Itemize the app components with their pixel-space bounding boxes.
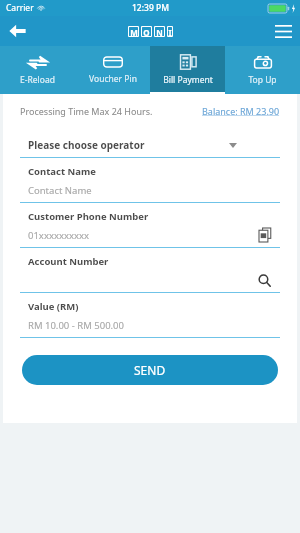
staticText: SEND — [134, 362, 166, 378]
button[interactable]: SEND — [22, 355, 278, 385]
staticText: M — [130, 27, 138, 36]
staticText: Carrier — [6, 2, 34, 14]
staticText: Processing Time Max 24 Hours. — [20, 105, 153, 117]
button[interactable]: Voucher Pin — [75, 46, 150, 94]
button[interactable]: Please choose operator — [3, 133, 297, 157]
button[interactable]: Search — [256, 272, 272, 288]
staticText: Voucher Pin — [89, 73, 137, 85]
button[interactable]: Account Number — [3, 248, 297, 292]
staticText: Value (RM) — [28, 300, 79, 313]
button[interactable]: Value (RM) — [3, 293, 297, 337]
staticText: Account Number — [28, 255, 109, 268]
staticText: Balance: RM 23.90 — [202, 105, 280, 117]
staticText: Contact Name — [28, 184, 92, 197]
button[interactable]: Back — [0, 16, 34, 46]
button[interactable]: Customer Phone Number — [3, 203, 297, 247]
button[interactable]: Top Up — [225, 46, 300, 94]
staticText: Bill Payment — [163, 74, 213, 86]
staticText: N — [156, 27, 163, 36]
staticText: 12:39 PM — [132, 2, 169, 14]
button[interactable]: Menu — [266, 16, 300, 46]
staticText: E-Reload — [20, 74, 55, 86]
staticText: RM 10.00 - RM 500.00 — [28, 319, 124, 332]
staticText: Please choose operator — [28, 138, 145, 152]
button[interactable]: Bill Payment — [150, 46, 225, 94]
staticText: I — [168, 27, 172, 36]
staticText: Customer Phone Number — [28, 210, 149, 223]
staticText: O — [143, 27, 150, 36]
button[interactable]: E-Reload — [0, 46, 75, 94]
button[interactable]: Contact Name — [3, 158, 297, 202]
staticText: Contact Name — [28, 165, 96, 178]
staticText: Top Up — [248, 74, 277, 86]
button[interactable]: Balance: RM 23.90 — [202, 105, 280, 117]
staticText: 01xxxxxxxxxx — [28, 229, 90, 242]
button[interactable]: Choose contact — [258, 227, 272, 243]
